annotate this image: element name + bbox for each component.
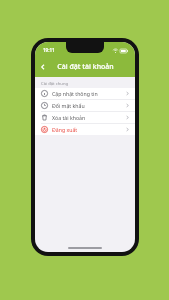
staticText: 19:11 bbox=[43, 47, 55, 53]
staticText: Đổi mật khẩu bbox=[52, 102, 126, 109]
staticText: Cài đặt tài khoản bbox=[57, 62, 114, 72]
button[interactable]: Đăng xuất bbox=[35, 124, 135, 135]
button[interactable]: Đổi mật khẩu bbox=[35, 100, 135, 111]
staticText: Cập nhật thông tin bbox=[52, 90, 126, 97]
button[interactable]: Xóa tài khoản bbox=[35, 112, 135, 123]
staticText: Đăng xuất bbox=[52, 126, 126, 133]
button[interactable]: Back bbox=[35, 59, 51, 75]
staticText: Xóa tài khoản bbox=[52, 114, 126, 121]
button[interactable]: Cập nhật thông tin bbox=[35, 88, 135, 99]
staticText: Cài đặt chung bbox=[41, 81, 69, 87]
